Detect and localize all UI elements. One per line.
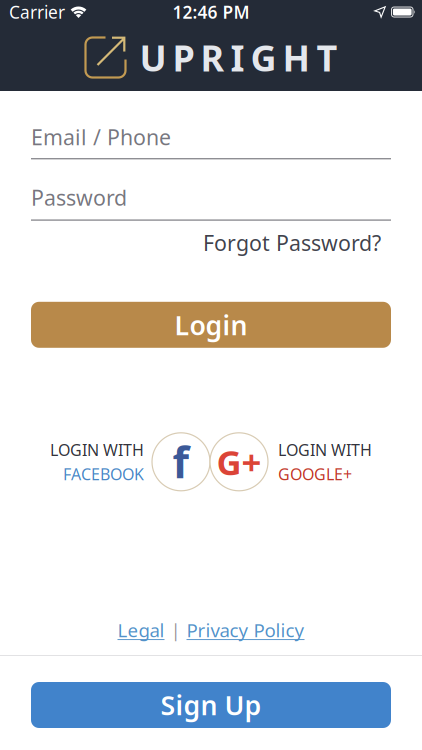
staticText: U [139,34,166,81]
button[interactable]: Privacy Policy [186,618,304,642]
button[interactable]: Password [31,186,391,221]
staticText: G [250,34,276,81]
staticText: f [172,433,189,490]
staticText: Sign Up [160,687,261,723]
staticText: Login [174,307,247,342]
staticText: I [230,34,244,81]
staticText: FACEBOOK [63,463,144,484]
button[interactable]: Email / Phone [31,126,391,159]
staticText: T [316,34,337,81]
staticText: R [200,34,224,81]
staticText: LOGIN WITH [50,439,144,460]
staticText: Email / Phone [31,123,171,151]
staticText: LOGIN WITH [278,439,372,460]
staticText: Carrier [9,0,65,23]
staticText: 12:46 PM [172,0,249,23]
button[interactable]: G+ [210,433,372,491]
button[interactable]: LOGIN WITH [50,433,210,491]
staticText: | [170,618,180,642]
staticText: Legal [117,618,164,642]
button[interactable]: Sign Up [31,682,391,728]
staticText: Privacy Policy [186,618,304,642]
button[interactable]: Forgot Password? [203,232,381,254]
staticText: G+ [216,439,261,485]
staticText: Forgot Password? [203,229,381,257]
staticText: GOOGLE+ [278,463,352,484]
button[interactable]: Legal [117,618,164,642]
staticText: H [282,34,310,81]
staticText: Password [31,183,127,211]
button[interactable]: Login [31,302,391,348]
staticText: P [172,34,194,81]
